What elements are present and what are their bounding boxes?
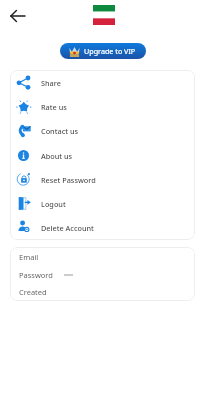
staticText: Email (19, 252, 39, 262)
button[interactable]: Language (93, 5, 115, 25)
button[interactable]: Rate us (10, 95, 195, 118)
button[interactable]: About us (10, 144, 195, 167)
staticText: Share (41, 78, 61, 88)
staticText: Created (19, 287, 47, 297)
button[interactable]: Reset Password (10, 168, 195, 191)
staticText: Upgrade to VIP (84, 46, 136, 56)
button[interactable]: Logout (10, 192, 195, 215)
button[interactable]: Delete Account (10, 216, 195, 239)
staticText: Reset Password (41, 175, 96, 185)
staticText: Password (19, 270, 53, 280)
staticText: Logout (41, 199, 66, 209)
staticText: Contact us (41, 126, 79, 136)
button[interactable]: Upgrade to VIP (60, 43, 146, 59)
staticText: About us (41, 151, 73, 161)
button[interactable]: Share (10, 71, 195, 94)
staticText: Delete Account (41, 223, 94, 233)
button[interactable]: Back (10, 8, 26, 24)
staticText: Rate us (41, 102, 67, 112)
button[interactable]: Contact us (10, 119, 195, 142)
